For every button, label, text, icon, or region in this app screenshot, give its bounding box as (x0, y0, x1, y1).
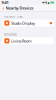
staticText: SUGGESTED (4, 33, 17, 36)
staticText: 9:41 (1, 0, 8, 5)
button[interactable]: Studio Display (2, 20, 54, 27)
staticText: ▲ (47, 1, 49, 4)
staticText: Living Room (11, 38, 32, 43)
staticText: Studio Display (11, 20, 35, 26)
staticText: ‹ (2, 4, 4, 12)
button[interactable]: Back (1, 5, 5, 11)
button[interactable]: Living Room (2, 37, 54, 44)
staticText: Nearby Devices (5, 5, 33, 11)
staticText: RECENTLY USED (4, 15, 23, 18)
